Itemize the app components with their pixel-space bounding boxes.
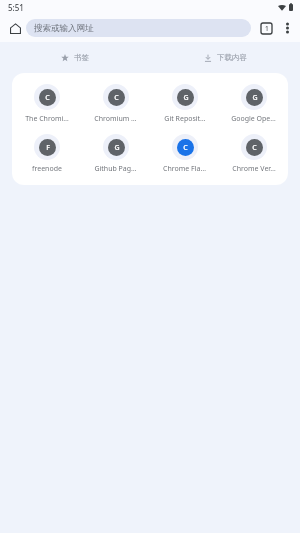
button[interactable]: G (81, 131, 150, 177)
staticText: Chromium … (94, 114, 137, 124)
button[interactable]: Home (4, 17, 26, 39)
button[interactable]: 书签 (57, 52, 93, 63)
staticText: C (183, 143, 188, 153)
staticText: G (252, 93, 258, 103)
button[interactable]: 搜索或输入网址 (26, 19, 251, 37)
button[interactable]: G (150, 81, 219, 127)
button[interactable]: C (150, 131, 219, 177)
staticText: 搜索或输入网址 (34, 23, 94, 34)
staticText: 1 (265, 24, 269, 33)
staticText: Git Reposit… (164, 114, 206, 124)
button[interactable]: F (12, 131, 81, 177)
staticText: G (183, 93, 189, 103)
staticText: C (252, 143, 257, 153)
staticText: 下载内容 (217, 53, 247, 62)
button[interactable]: Tabs: 1 (256, 18, 276, 38)
button[interactable]: 下载内容 (200, 52, 251, 63)
button[interactable]: C (219, 131, 288, 177)
staticText: The Chromi… (25, 114, 69, 124)
staticText: Chrome Fla… (163, 164, 206, 174)
staticText: 书签 (74, 53, 89, 62)
button[interactable]: C (12, 81, 81, 127)
button[interactable]: More options (277, 18, 297, 38)
staticText: freenode (32, 164, 62, 174)
button[interactable]: C (81, 81, 150, 127)
staticText: C (45, 93, 50, 103)
staticText: Google Ope… (231, 114, 276, 124)
button[interactable]: G (219, 81, 288, 127)
staticText: C (114, 93, 119, 103)
staticText: G (114, 143, 120, 153)
staticText: F (46, 143, 50, 153)
staticText: 5:51 (8, 2, 24, 13)
staticText: Chrome Ver… (232, 164, 276, 174)
staticText: Github Pag… (94, 164, 137, 174)
